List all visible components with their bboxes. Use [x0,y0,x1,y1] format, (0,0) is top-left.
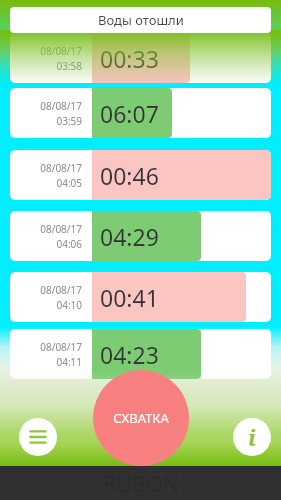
button[interactable]: 08/08/17 [10,33,271,83]
staticText: 08/08/17 [40,44,82,58]
button[interactable]: 08/08/17 [10,88,271,138]
staticText: 08/08/17 [40,99,82,113]
button[interactable]: 08/08/17 [10,329,271,379]
button[interactable]: СХВАТКА [93,370,189,466]
staticText: Воды отошли [98,11,184,29]
staticText: 08/08/17 [40,283,82,297]
staticText: 04:06 [56,237,82,251]
staticText: 04:10 [56,298,82,312]
staticText: 03:59 [56,114,82,128]
staticText: 00:33 [100,43,159,74]
staticText: 06:07 [100,98,159,129]
staticText: 08/08/17 [40,340,82,354]
staticText: 00:41 [100,282,159,313]
staticText: 04:29 [100,221,159,252]
button[interactable]: Воды отошли [10,7,271,33]
button[interactable]: Info [233,418,271,456]
staticText: СХВАТКА [113,409,169,427]
staticText: 03:58 [56,59,82,73]
staticText: 04:05 [56,176,82,190]
staticText: 04:11 [56,355,82,369]
staticText: i [248,422,256,452]
staticText: 08/08/17 [40,161,82,175]
staticText: 00:46 [100,160,159,191]
button[interactable]: Menu [19,418,57,456]
staticText: 04:23 [100,339,159,370]
button[interactable]: 08/08/17 [10,150,271,200]
staticText: 08/08/17 [40,222,82,236]
button[interactable]: 08/08/17 [10,211,271,261]
button[interactable]: 08/08/17 [10,272,271,322]
